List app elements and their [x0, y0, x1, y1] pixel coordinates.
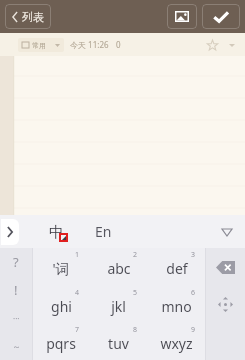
button[interactable]: Move cursor — [206, 286, 245, 323]
button[interactable]: 2 — [90, 248, 147, 286]
button[interactable]: 7 — [33, 323, 89, 360]
button[interactable]: Star — [201, 34, 223, 56]
button[interactable]: More — [223, 36, 241, 54]
button[interactable]: 中 — [41, 217, 71, 247]
staticText: wxyz — [160, 334, 193, 353]
button[interactable]: 6 — [148, 286, 205, 323]
button[interactable]: Done — [202, 4, 240, 29]
button[interactable]: ? — [0, 248, 32, 276]
button[interactable]: ··· — [0, 304, 32, 332]
staticText: 3 — [191, 250, 196, 260]
button[interactable]: 3 — [148, 248, 205, 286]
button[interactable]: Expand — [1, 219, 19, 245]
staticText: 8 — [133, 325, 138, 335]
button[interactable]: 列表 — [5, 4, 51, 29]
button[interactable]: ～ — [0, 332, 32, 360]
button[interactable]: 4 — [33, 286, 89, 323]
button[interactable]: 9 — [148, 323, 205, 360]
staticText: tuv — [108, 334, 129, 353]
staticText: '词 — [52, 259, 70, 278]
staticText: ? — [13, 253, 19, 271]
staticText: 6 — [191, 288, 196, 298]
staticText: 今天 11:26 — [70, 39, 109, 50]
staticText: mno — [161, 297, 192, 316]
staticText: 5 — [133, 288, 138, 298]
button[interactable]: 1 — [33, 248, 89, 286]
staticText: 2 — [133, 250, 138, 260]
staticText: 7 — [75, 325, 80, 335]
staticText: 9 — [191, 325, 196, 335]
staticText: 0 — [116, 39, 121, 50]
staticText: ! — [14, 281, 18, 299]
button[interactable]: Backspace — [206, 248, 245, 286]
staticText: ghi — [51, 297, 72, 316]
button[interactable]: ! — [0, 276, 32, 304]
staticText: 1 — [75, 250, 80, 260]
staticText: ··· — [13, 313, 20, 324]
staticText: jkl — [111, 297, 126, 316]
staticText: 中 — [49, 223, 64, 242]
button[interactable]: Insert image — [167, 4, 197, 29]
button[interactable]: 5 — [90, 286, 147, 323]
staticText: 4 — [75, 288, 80, 298]
staticText: ～ — [12, 341, 21, 352]
staticText: 列表 — [22, 10, 44, 24]
staticText: En — [95, 222, 112, 241]
staticText: def — [166, 259, 188, 278]
button[interactable]: 8 — [90, 323, 147, 360]
button[interactable]: 常用 — [18, 38, 64, 52]
button[interactable]: En — [91, 222, 116, 241]
staticText: 常用 — [32, 41, 46, 50]
staticText: pqrs — [46, 334, 76, 353]
button[interactable]: Hide keyboard — [213, 218, 241, 246]
staticText: abc — [107, 259, 131, 278]
